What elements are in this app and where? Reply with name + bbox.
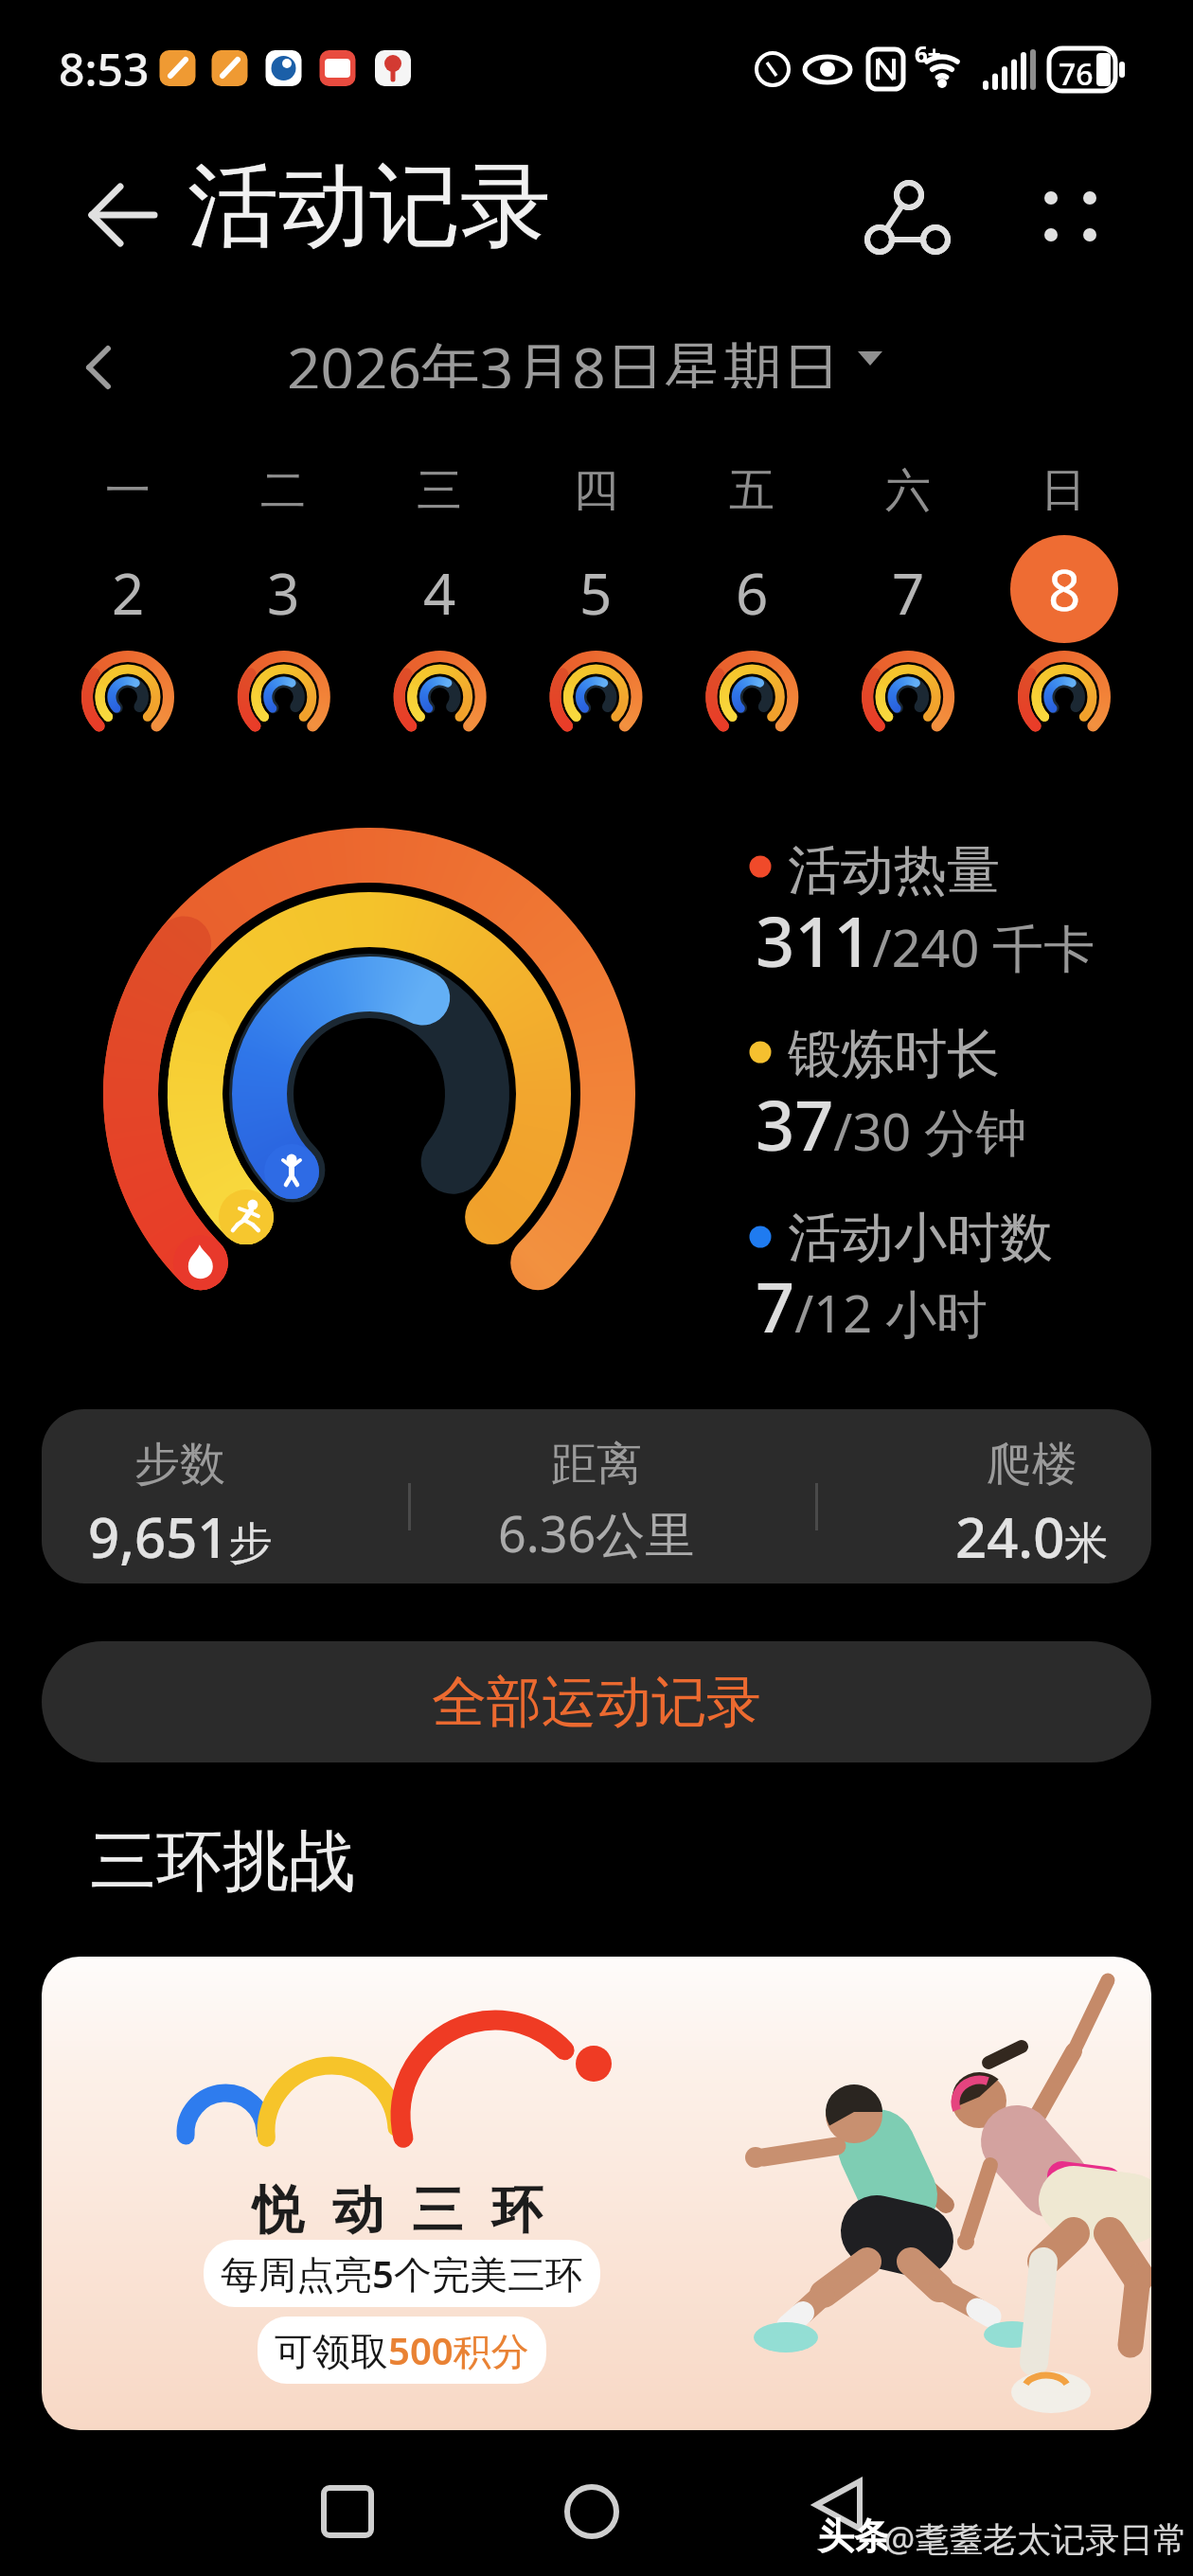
- staticText: 6: [736, 554, 769, 632]
- staticText: 6.36公里: [498, 1499, 695, 1566]
- button[interactable]: [852, 170, 956, 265]
- staticText: 头条: [818, 2513, 890, 2559]
- staticText: 四: [573, 462, 618, 519]
- staticText: 全部运动记录: [432, 1668, 761, 1737]
- staticText: 一: [105, 462, 151, 519]
- button[interactable]: 全部运动记录: [42, 1641, 1151, 1762]
- staticText: 六: [885, 462, 931, 519]
- staticText: 二: [260, 462, 306, 519]
- button[interactable]: 悦 动 三 环: [42, 1957, 1151, 2430]
- staticText: 活动记录: [187, 150, 551, 264]
- button[interactable]: 3: [205, 554, 361, 632]
- staticText: 8: [1048, 550, 1081, 628]
- staticText: 76: [1059, 53, 1094, 95]
- staticText: 8:53: [59, 38, 150, 99]
- staticText: 7/12 小时: [756, 1260, 988, 1352]
- staticText: 活动小时数: [788, 1205, 1053, 1272]
- staticText: 日: [1041, 462, 1086, 519]
- staticText: 五: [729, 462, 775, 519]
- staticText: @耄耋老太记录日常: [884, 2515, 1188, 2562]
- button[interactable]: [303, 2462, 398, 2557]
- staticText: 7: [892, 554, 925, 632]
- staticText: 可领取500积分: [275, 2324, 529, 2376]
- staticText: 三: [417, 462, 462, 519]
- staticText: 3: [267, 554, 300, 632]
- staticText: 三环挑战: [90, 1820, 355, 1904]
- staticText: 步数: [134, 1436, 225, 1493]
- staticText: 5: [579, 554, 613, 632]
- button[interactable]: 2: [50, 554, 205, 632]
- staticText: 2: [112, 554, 145, 632]
- staticText: 悦 动 三 环: [253, 2173, 551, 2243]
- staticText: 37/30 分钟: [756, 1078, 1027, 1171]
- staticText: 每周点亮5个完美三环: [221, 2247, 583, 2299]
- button[interactable]: [1023, 170, 1127, 265]
- staticText: 311/240 千卡: [756, 894, 1095, 987]
- button[interactable]: 8: [1010, 535, 1118, 643]
- staticText: 4: [423, 554, 456, 632]
- button[interactable]: 4: [362, 554, 517, 632]
- button[interactable]: 6: [674, 554, 829, 632]
- button[interactable]: [76, 180, 151, 256]
- button[interactable]: 7: [830, 554, 986, 632]
- button[interactable]: [549, 2462, 644, 2557]
- staticText: 爬楼: [987, 1436, 1077, 1493]
- staticText: 9,651步: [88, 1499, 273, 1574]
- button[interactable]: [795, 2462, 890, 2557]
- button[interactable]: 步数: [42, 1409, 1151, 1583]
- staticText: 6+: [915, 38, 941, 69]
- staticText: 锻炼时长: [788, 1021, 1000, 1088]
- staticText: 2026年3月8日星期日: [287, 328, 841, 388]
- staticText: 距离: [551, 1436, 642, 1493]
- button[interactable]: 5: [518, 554, 673, 632]
- staticText: 活动热量: [788, 837, 1000, 904]
- button[interactable]: 2026年3月8日星期日: [0, 328, 1193, 388]
- staticText: 24.0米: [955, 1499, 1109, 1574]
